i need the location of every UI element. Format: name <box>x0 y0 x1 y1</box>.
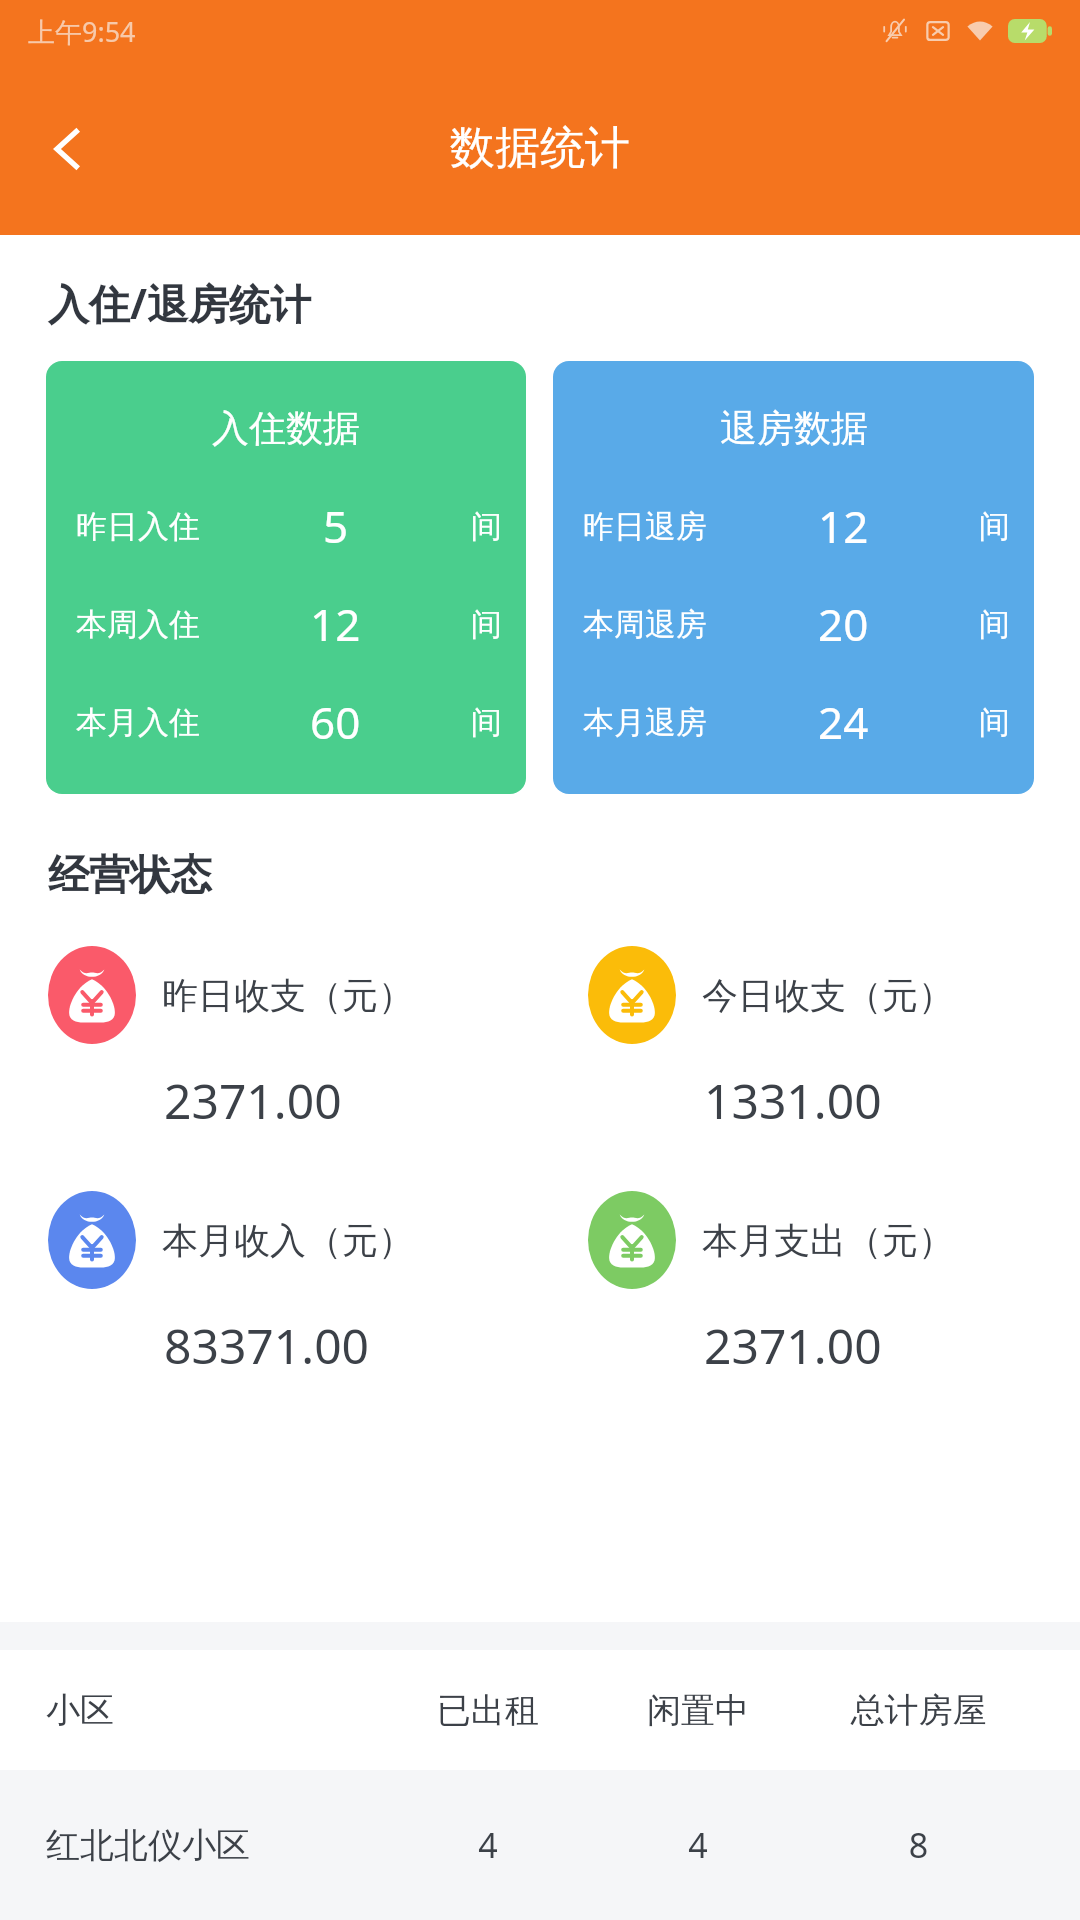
button[interactable]: 本月支出（元） <box>540 1191 1080 1378</box>
staticText: 间 <box>979 605 1010 644</box>
staticText: 本月支出（元） <box>702 1218 954 1263</box>
staticText: 入住数据 <box>212 405 360 452</box>
staticText: 小区 <box>46 1689 383 1732</box>
staticText: 本月入住 <box>76 703 200 742</box>
staticText: 12 <box>818 496 869 556</box>
staticText: 入住/退房统计 <box>48 275 312 331</box>
staticText: 60 <box>310 692 361 752</box>
staticText: 红北北仪小区 <box>46 1824 383 1867</box>
staticText: 昨日退房 <box>583 507 707 546</box>
staticText: 间 <box>471 507 502 546</box>
button[interactable]: 入住数据 <box>46 361 526 794</box>
button[interactable]: 本月收入（元） <box>0 1191 540 1378</box>
staticText: 2371.00 <box>164 1068 342 1133</box>
staticText: 4 <box>383 1822 593 1868</box>
staticText: 1331.00 <box>704 1068 882 1133</box>
staticText: 昨日入住 <box>76 507 200 546</box>
staticText: 已出租 <box>383 1689 593 1732</box>
staticText: 昨日收支（元） <box>162 973 414 1018</box>
staticText: 间 <box>471 703 502 742</box>
staticText: 闲置中 <box>593 1689 803 1732</box>
staticText: 间 <box>979 507 1010 546</box>
button[interactable]: 退房数据 <box>553 361 1034 794</box>
staticText: 本周退房 <box>583 605 707 644</box>
staticText: 20 <box>818 594 869 654</box>
staticText: 5 <box>323 496 349 556</box>
staticText: 2371.00 <box>704 1313 882 1378</box>
staticText: 24 <box>818 692 869 752</box>
button[interactable]: 红北北仪小区 <box>0 1770 1080 1920</box>
staticText: 4 <box>593 1822 803 1868</box>
staticText: 经营状态 <box>48 850 212 902</box>
staticText: 间 <box>471 605 502 644</box>
staticText: 8 <box>803 1822 1034 1868</box>
staticText: 总计房屋 <box>803 1689 1034 1732</box>
staticText: 数据统计 <box>450 120 630 177</box>
button[interactable]: 小区 <box>0 1650 1080 1770</box>
staticText: 83371.00 <box>164 1313 370 1378</box>
staticText: 12 <box>310 594 361 654</box>
button[interactable]: Back <box>22 103 114 195</box>
staticText: 本周入住 <box>76 605 200 644</box>
staticText: 上午9:54 <box>28 13 136 50</box>
staticText: 间 <box>979 703 1010 742</box>
staticText: 本月收入（元） <box>162 1218 414 1263</box>
button[interactable]: 今日收支（元） <box>540 946 1080 1133</box>
staticText: 今日收支（元） <box>702 973 954 1018</box>
button[interactable]: 昨日收支（元） <box>0 946 540 1133</box>
staticText: 本月退房 <box>583 703 707 742</box>
staticText: 退房数据 <box>720 405 868 452</box>
